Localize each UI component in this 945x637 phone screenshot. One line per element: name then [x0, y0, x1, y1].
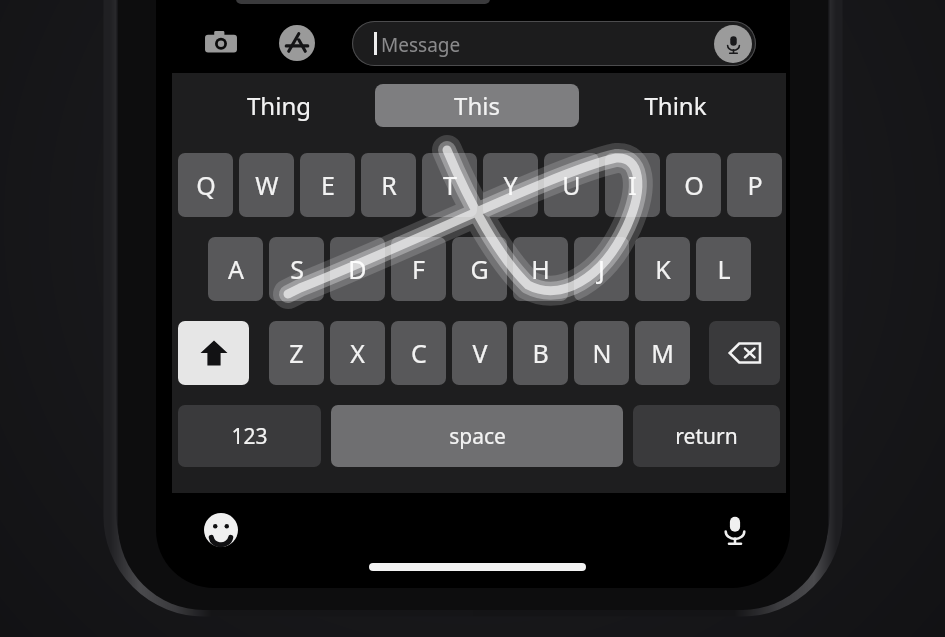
button[interactable]: Audio message [714, 25, 752, 63]
staticText: space [449, 422, 506, 451]
staticText: J [598, 252, 605, 286]
staticText: M [651, 336, 674, 370]
button[interactable]: H [513, 237, 568, 301]
button[interactable]: O [666, 153, 721, 217]
button[interactable]: T [422, 153, 477, 217]
button[interactable]: Y [483, 153, 538, 217]
button[interactable]: S [269, 237, 324, 301]
button[interactable]: Backspace [709, 321, 780, 385]
staticText: return [675, 422, 738, 451]
staticText: I [628, 168, 637, 202]
staticText: C [411, 336, 427, 370]
staticText: G [470, 252, 489, 286]
staticText: Message [381, 32, 461, 58]
button[interactable]: A [208, 237, 263, 301]
button[interactable]: Dictation [710, 505, 760, 555]
staticText: U [562, 168, 581, 202]
button[interactable]: Camera [196, 18, 246, 68]
button[interactable]: K [635, 237, 690, 301]
staticText: Thing [247, 89, 311, 122]
button[interactable]: X [330, 321, 385, 385]
staticText: X [350, 336, 365, 370]
staticText: K [655, 252, 671, 286]
button[interactable]: Message [352, 21, 756, 66]
staticText: This [454, 89, 500, 122]
button[interactable]: I [605, 153, 660, 217]
button[interactable]: Emoji [196, 505, 246, 555]
staticText: B [532, 336, 549, 370]
button[interactable]: G [452, 237, 507, 301]
button[interactable]: B [513, 321, 568, 385]
staticText: Think [644, 89, 707, 122]
staticText: O [684, 168, 704, 202]
staticText: R [381, 168, 397, 202]
button[interactable]: return [633, 405, 780, 467]
staticText: V [472, 336, 488, 370]
staticText: Z [289, 336, 304, 370]
button[interactable]: Shift [178, 321, 249, 385]
staticText: H [531, 252, 550, 286]
staticText: N [592, 336, 612, 370]
staticText: Y [503, 168, 518, 202]
staticText: D [348, 252, 367, 286]
button[interactable]: P [727, 153, 782, 217]
button[interactable]: space [331, 405, 623, 467]
button[interactable]: J [574, 237, 629, 301]
staticText: W [255, 168, 279, 202]
button[interactable]: Q [178, 153, 233, 217]
staticText: Q [196, 168, 216, 202]
staticText: P [747, 168, 763, 202]
button[interactable]: 123 [178, 405, 321, 467]
staticText: E [321, 168, 335, 202]
staticText: A [228, 252, 244, 286]
staticText: F [412, 252, 425, 286]
button[interactable]: F [391, 237, 446, 301]
staticText: 123 [231, 422, 268, 451]
button[interactable]: This [375, 84, 579, 127]
button[interactable]: C [391, 321, 446, 385]
button[interactable]: App Store [272, 18, 322, 68]
button[interactable]: V [452, 321, 507, 385]
button[interactable]: W [239, 153, 294, 217]
button[interactable]: R [361, 153, 416, 217]
button[interactable]: Z [269, 321, 324, 385]
button[interactable]: N [574, 321, 629, 385]
staticText: S [290, 252, 304, 286]
button[interactable]: Think [600, 85, 750, 125]
staticText: T [443, 168, 457, 202]
button[interactable]: E [300, 153, 355, 217]
button[interactable]: D [330, 237, 385, 301]
button[interactable]: U [544, 153, 599, 217]
button[interactable]: M [635, 321, 690, 385]
button[interactable]: L [696, 237, 751, 301]
staticText: L [717, 252, 731, 286]
button[interactable]: Thing [204, 85, 354, 125]
